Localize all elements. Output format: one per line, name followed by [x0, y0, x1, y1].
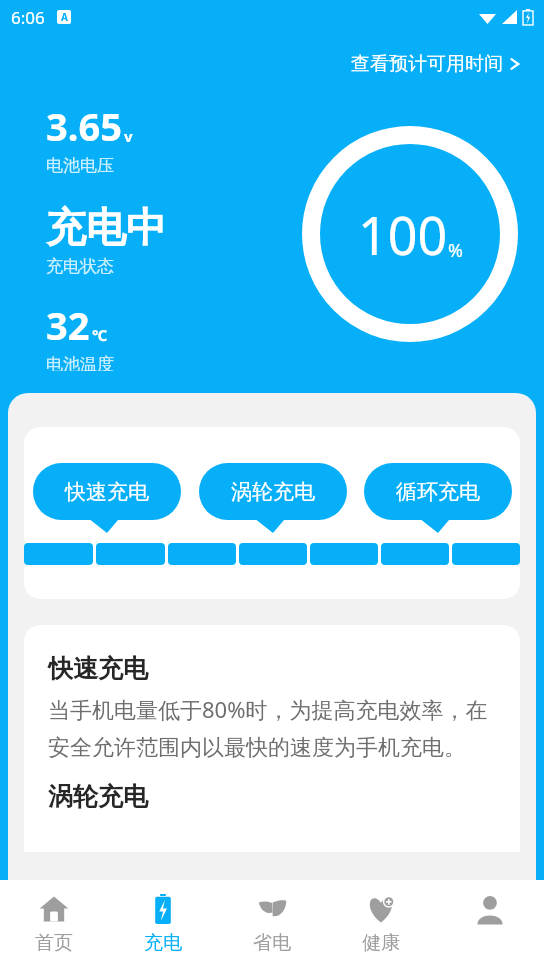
staticText: 100 [358, 199, 448, 270]
staticText: 32 [46, 299, 90, 351]
staticText: 充电状态 [46, 256, 114, 277]
button[interactable]: 省电 [217, 880, 326, 968]
staticText: v [124, 126, 133, 146]
staticText: 健康 [362, 931, 400, 955]
staticText: 充电中 [46, 202, 166, 252]
staticText: 查看预计可用时间 [351, 52, 503, 76]
staticText: 涡轮充电 [231, 479, 315, 505]
staticText: 电池温度 [46, 354, 114, 371]
staticText: 涡轮充电 [48, 781, 148, 812]
staticText: 首页 [35, 931, 73, 955]
staticText: 6:06 [11, 6, 45, 29]
button[interactable]: 循环充电 [364, 463, 512, 533]
staticText: 快速充电 [65, 479, 149, 505]
button[interactable]: 首页 [0, 880, 108, 968]
staticText: ℃ [92, 325, 108, 345]
staticText: 3.65 [46, 100, 122, 152]
button[interactable]: 充电 [108, 880, 217, 968]
button[interactable]: 我的 [435, 880, 544, 968]
staticText: 当手机电量低于80%时，为提高充电效率，在安全允许范围内以最快的速度为手机充电。 [48, 694, 500, 761]
button[interactable]: 涡轮充电 [199, 463, 347, 533]
staticText: 快速充电 [48, 653, 148, 684]
staticText: 充电 [144, 931, 182, 955]
staticText: A [61, 10, 68, 24]
button[interactable]: 健康 [326, 880, 435, 968]
staticText: 循环充电 [396, 479, 480, 505]
button[interactable]: 查看预计可用时间 [345, 46, 526, 82]
staticText: 电池电压 [46, 155, 114, 176]
staticText: 省电 [253, 931, 291, 955]
staticText: % [448, 238, 463, 263]
button[interactable]: 快速充电 [33, 463, 181, 533]
